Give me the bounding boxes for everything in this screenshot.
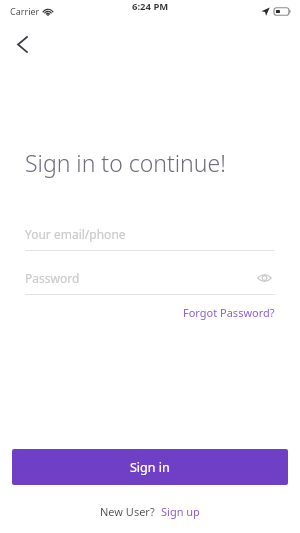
button[interactable]: Your email/phone — [25, 223, 275, 251]
button[interactable]: Sign in — [12, 449, 288, 485]
staticText: New User? — [100, 504, 155, 519]
button[interactable]: Password — [25, 267, 275, 288]
button[interactable]: Forgot Password? — [183, 303, 275, 322]
button[interactable]: Show password — [253, 267, 275, 288]
staticText: Carrier — [10, 5, 40, 17]
button[interactable]: Back — [4, 26, 40, 62]
button[interactable]: Sign up — [161, 504, 200, 519]
staticText: 6:24 PM — [132, 0, 169, 13]
staticText: Sign in to continue! — [25, 147, 226, 178]
staticText: Sign in — [130, 459, 170, 476]
staticText: Your email/phone — [25, 226, 126, 242]
staticText: Password — [25, 270, 80, 286]
staticText: Forgot Password? — [183, 305, 275, 320]
staticText: Sign up — [161, 504, 200, 519]
